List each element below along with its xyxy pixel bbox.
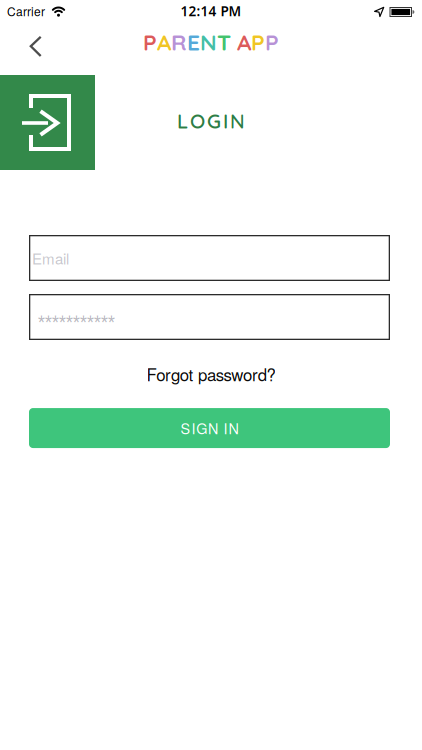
- staticText: P: [251, 28, 265, 56]
- button[interactable]: SIGN IN: [0, 408, 422, 448]
- staticText: P: [265, 28, 279, 56]
- staticText: ***********: [38, 313, 115, 331]
- staticText: Forgot password?: [146, 362, 275, 386]
- staticText: R: [171, 28, 187, 56]
- staticText: A: [157, 28, 171, 56]
- staticText: LOGIN: [177, 108, 245, 133]
- staticText: 12:14 PM: [180, 2, 241, 20]
- staticText: N: [200, 28, 217, 56]
- button[interactable]: Forgot password?: [146, 362, 275, 386]
- staticText: E: [187, 28, 200, 56]
- button[interactable]: Back: [0, 22, 55, 75]
- textField[interactable]: Email: [0, 235, 422, 281]
- staticText: Carrier: [7, 2, 45, 20]
- staticText: A: [237, 28, 251, 56]
- staticText: T: [217, 28, 231, 56]
- staticText: P: [143, 28, 157, 56]
- secureTextField[interactable]: ***********: [0, 294, 422, 340]
- staticText: Email: [32, 247, 69, 269]
- staticText: SIGN IN: [181, 418, 238, 438]
